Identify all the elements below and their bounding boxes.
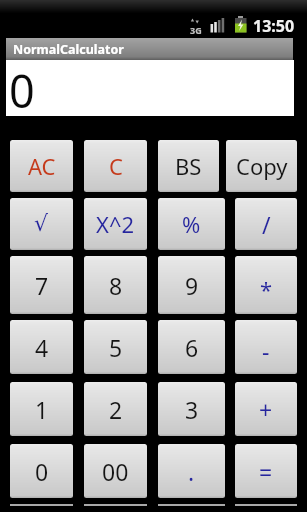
staticText: . — [188, 456, 195, 487]
staticText: √ — [34, 211, 49, 237]
staticText: 4 — [35, 332, 49, 363]
staticText: C — [109, 151, 123, 181]
staticText: 5 — [109, 332, 123, 363]
button[interactable]: BS — [158, 140, 219, 192]
staticText: 2 — [109, 394, 123, 425]
button[interactable]: 1 — [10, 382, 73, 436]
staticText: 1 — [35, 394, 49, 425]
button[interactable]: % — [158, 198, 225, 250]
button[interactable]: 0 — [10, 444, 73, 498]
staticText: 6 — [185, 332, 199, 363]
button[interactable]: Copy — [226, 140, 297, 192]
staticText: 0 — [35, 456, 49, 487]
staticText: 3 — [185, 394, 199, 425]
button[interactable]: 6 — [158, 320, 225, 374]
staticText: - — [262, 335, 270, 366]
staticText: / — [262, 209, 271, 240]
button[interactable]: 5 — [84, 320, 147, 374]
button[interactable]: √ — [10, 198, 73, 250]
staticText: = — [259, 456, 273, 487]
staticText: BS — [175, 151, 202, 181]
button[interactable]: 8 — [84, 256, 147, 314]
staticText: 0 — [9, 60, 35, 116]
staticText: + — [259, 394, 273, 425]
button[interactable]: 2 — [84, 382, 147, 436]
button[interactable]: * — [235, 256, 297, 314]
staticText: X^2 — [96, 209, 135, 239]
staticText: 3G — [190, 24, 202, 36]
button[interactable]: / — [235, 198, 297, 250]
staticText: % — [182, 209, 201, 239]
button[interactable]: 0 — [6, 60, 294, 116]
staticText: 8 — [109, 270, 123, 301]
button[interactable]: C — [84, 140, 147, 192]
staticText: Copy — [236, 151, 288, 181]
button[interactable]: 3 — [158, 382, 225, 436]
staticText: 00 — [102, 456, 129, 487]
button[interactable]: 7 — [10, 256, 73, 314]
button[interactable]: = — [235, 444, 297, 498]
staticText: 13:50 — [253, 15, 295, 37]
button[interactable]: 4 — [10, 320, 73, 374]
button[interactable]: + — [235, 382, 297, 436]
button[interactable]: . — [158, 444, 225, 498]
button[interactable]: X^2 — [84, 198, 147, 250]
button[interactable]: 00 — [84, 444, 147, 498]
staticText: 7 — [35, 270, 49, 301]
staticText: 9 — [185, 270, 199, 301]
staticText: AC — [28, 151, 56, 181]
button[interactable]: 9 — [158, 256, 225, 314]
staticText: * — [260, 274, 273, 304]
button[interactable]: AC — [10, 140, 73, 192]
staticText: NormalCalculator — [13, 41, 124, 58]
button[interactable]: - — [235, 320, 297, 374]
